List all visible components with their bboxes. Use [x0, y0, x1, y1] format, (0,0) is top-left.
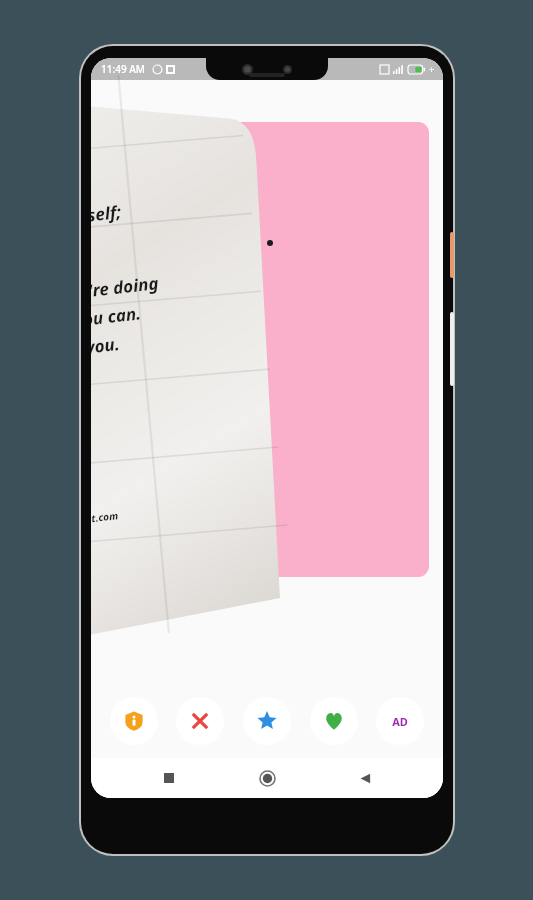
- button[interactable]: Recents: [149, 758, 189, 798]
- staticText: nt.com: [91, 508, 119, 526]
- button[interactable]: Close: [176, 697, 224, 745]
- button[interactable]: AD: [376, 697, 424, 745]
- staticText: t you can.: [91, 301, 143, 333]
- button[interactable]: yourself;: [91, 59, 324, 645]
- staticText: +: [429, 63, 435, 75]
- staticText: 11:49 AM: [101, 62, 145, 76]
- button[interactable]: Either you have a reason or you have an …: [99, 122, 429, 577]
- button[interactable]: Favorite star: [243, 697, 291, 745]
- staticText: in you.: [91, 332, 121, 361]
- button[interactable]: Like: [310, 697, 358, 745]
- staticText: AD: [392, 714, 408, 729]
- staticText: yourself;: [91, 200, 123, 231]
- staticText: Either you have a reason or you have an …: [129, 282, 234, 456]
- staticText: you're doing: [91, 271, 160, 305]
- button[interactable]: Home: [247, 758, 287, 798]
- button[interactable]: Back: [345, 758, 385, 798]
- button[interactable]: Report: [110, 697, 158, 745]
